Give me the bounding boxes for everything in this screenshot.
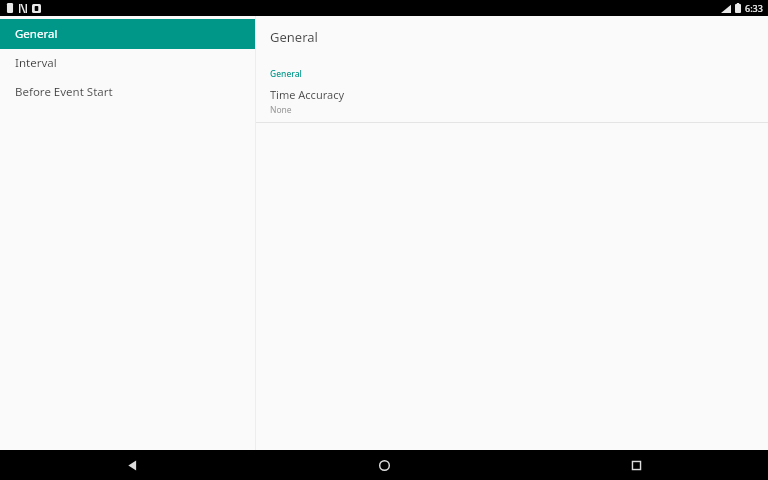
button[interactable]: Interval: [0, 49, 255, 77]
staticText: 6:33: [745, 2, 763, 14]
button[interactable]: Back: [0, 450, 256, 480]
staticText: General: [15, 26, 58, 42]
staticText: General: [270, 68, 302, 80]
staticText: Time Accuracy: [270, 87, 345, 102]
button[interactable]: Recent apps: [512, 450, 768, 480]
staticText: General: [270, 28, 318, 46]
button[interactable]: Before Event Start: [0, 77, 255, 106]
staticText: None: [270, 104, 292, 116]
staticText: Interval: [15, 55, 57, 71]
button[interactable]: Time Accuracy: [256, 86, 768, 122]
button[interactable]: General: [0, 19, 255, 49]
button[interactable]: Home: [256, 450, 512, 480]
staticText: Before Event Start: [15, 84, 113, 100]
